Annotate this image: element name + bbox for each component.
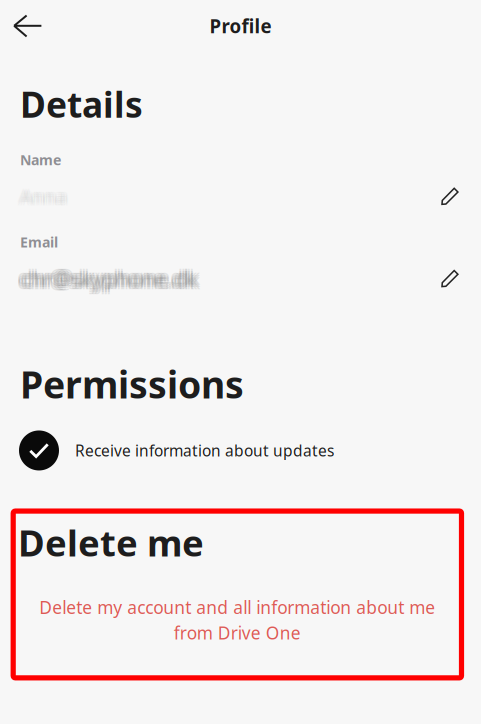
button[interactable]: Back xyxy=(0,0,62,52)
staticText: Receive information about updates xyxy=(75,440,334,461)
staticText: Email xyxy=(20,232,58,252)
staticText: Permissions xyxy=(20,359,244,409)
staticText: Name xyxy=(20,150,61,169)
button[interactable]: Edit Email xyxy=(0,262,481,296)
button[interactable]: Edit Name xyxy=(0,179,481,213)
button[interactable]: Receive information about updates xyxy=(0,428,481,472)
staticText: Anna xyxy=(20,184,66,209)
staticText: Profile xyxy=(209,13,271,39)
button[interactable]: Delete me xyxy=(11,508,464,680)
staticText: Delete me xyxy=(18,517,204,567)
staticText: Delete my account and all information ab… xyxy=(39,595,435,619)
staticText: from Drive One xyxy=(174,621,301,645)
staticText: Details xyxy=(20,80,143,128)
staticText: chr@skyphone.dk xyxy=(20,264,197,293)
